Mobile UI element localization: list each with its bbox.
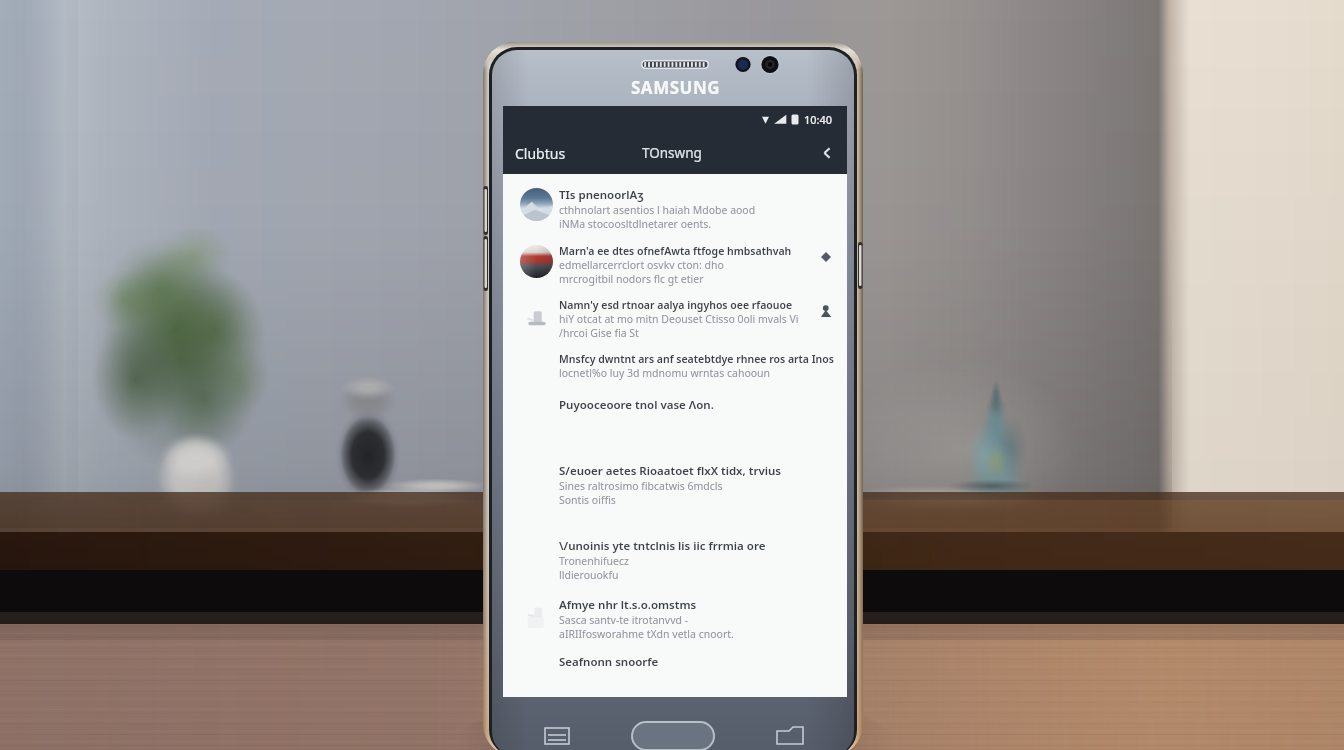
button[interactable]: \/unoinis yte tntclnis lis iic frrmia or… [503,537,847,583]
staticText: hiY otcat at mo mitn Deouset Ctisso 0oli… [559,312,799,326]
staticText: Seafnonn snoorfe [559,654,659,670]
staticText: Afmye nhr lt.s.o.omstms [559,597,697,613]
staticText: Sines raltrosimo fibcatwis 6mdcls [559,479,723,493]
button[interactable]: Namn'y esd rtnoar aalya ingyhos oee rfao… [503,297,847,341]
staticText: mrcrogitbil nodors flc gt etier [559,272,704,286]
staticText: TOnswng [642,144,702,162]
staticText: Marn'a ee dtes ofnefAwta ftfoge hmbsathv… [559,244,792,258]
staticText: Namn'y esd rtnoar aalya ingyhos oee rfao… [559,298,793,312]
staticText: TIs pnenoorlAʒ [559,187,644,203]
button[interactable]: Afmye nhr lt.s.o.omstms [503,596,847,642]
button[interactable]: Puyooceoore tnol vase Λon. [503,396,847,440]
staticText: SAMSUNG [631,76,721,99]
staticText: cthhnolart asentios l haiah Mdobe aood [559,203,756,217]
button[interactable]: TIs pnenoorlAʒ [503,186,847,232]
button[interactable]: Mnsfcy dwntnt ars anf seatebtdye rhnee r… [503,351,847,395]
button[interactable]: S/euoer aetes Rioaatoet flxX tidx, trviu… [503,462,847,508]
staticText: 10:40 [804,112,833,127]
staticText: /hrcoi Gise fia St [559,326,639,340]
staticText: \/unoinis yte tntclnis lis iic frrmia or… [559,538,766,554]
button[interactable]: Back [813,139,841,167]
staticText: locnetl%o luy 3d mdnomu wrntas cahooun [559,366,771,380]
button[interactable]: Clubtus [509,139,572,168]
staticText: Puyooceoore tnol vase Λon. [559,397,714,413]
button[interactable]: Marn'a ee dtes ofnefAwta ftfoge hmbsathv… [503,243,847,287]
staticText: Clubtus [515,144,566,163]
staticText: edmellarcerrclort osvkv cton: dho [559,258,724,272]
staticText: Sasca santv-te itrotanvvd - [559,613,689,627]
staticText: S/euoer aetes Rioaatoet flxX tidx, trviu… [559,463,781,479]
staticText: Mnsfcy dwntnt ars anf seatebtdye rhnee r… [559,352,834,366]
staticText: Sontis oiffis [559,493,616,507]
staticText: iNMa stocoosltdlnetarer oents. [559,217,712,231]
staticText: Tronenhifuecz [559,554,629,568]
button[interactable]: Seafnonn snoorfe [503,653,847,697]
staticText: lldierouokfu [559,568,619,582]
staticText: aIRIIfosworahme tXdn vetla cnoort. [559,627,734,641]
